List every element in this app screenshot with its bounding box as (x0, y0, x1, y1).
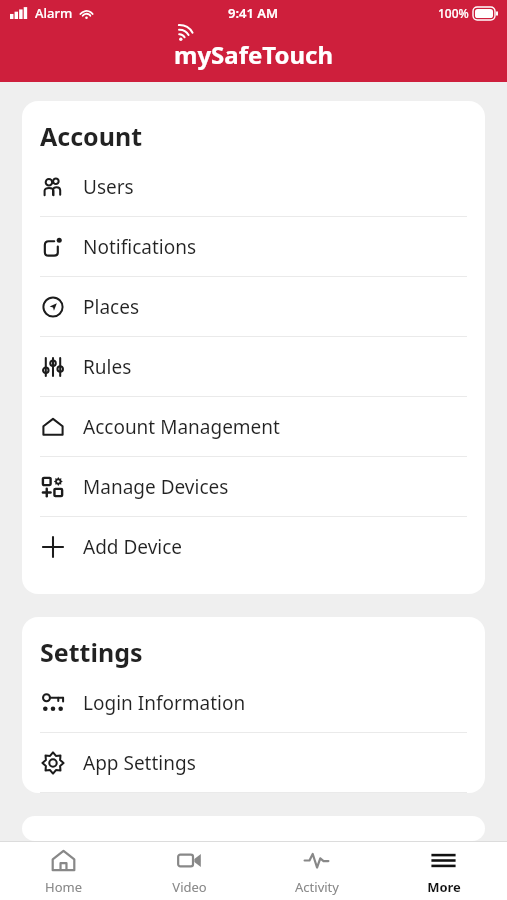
staticText: 9:41 AM (228, 4, 279, 22)
button[interactable]: Add Device (22, 517, 485, 594)
staticText: 100% (438, 5, 469, 21)
staticText: Rules (83, 354, 132, 380)
button[interactable]: Account Management (22, 397, 485, 457)
staticText: Account (40, 119, 143, 153)
button[interactable]: Manage Devices (22, 457, 485, 517)
staticText: Settings (40, 635, 143, 669)
staticText: Users (83, 174, 134, 200)
staticText: Alarm (35, 4, 73, 22)
staticText: Places (83, 294, 139, 320)
staticText: Home (45, 878, 82, 896)
button[interactable]: Users (22, 157, 485, 217)
button[interactable]: Places (22, 277, 485, 337)
button[interactable]: Login Information (22, 673, 485, 733)
button[interactable]: Activity (253, 842, 380, 900)
staticText: mySafeTouch (174, 38, 334, 71)
staticText: Login Information (83, 690, 246, 716)
staticText: More (427, 878, 461, 896)
staticText: App Settings (83, 750, 196, 776)
button[interactable]: Rules (22, 337, 485, 397)
button[interactable]: More (380, 842, 507, 900)
button[interactable]: App Settings (22, 733, 485, 793)
button[interactable]: Notifications (22, 217, 485, 277)
staticText: Activity (295, 878, 339, 896)
staticText: Video (172, 878, 207, 896)
button[interactable]: Home (0, 842, 126, 900)
button[interactable]: Video (126, 842, 253, 900)
staticText: Add Device (83, 534, 183, 560)
staticText: Manage Devices (83, 474, 229, 500)
staticText: Account Management (83, 414, 280, 440)
staticText: Notifications (83, 234, 197, 260)
